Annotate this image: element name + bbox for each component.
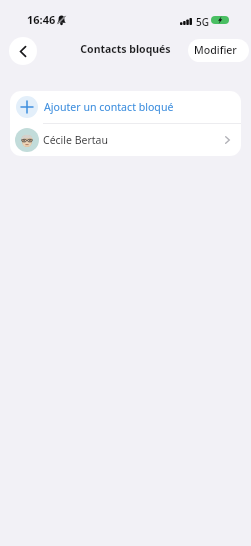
button[interactable]: Ajouter un contact bloqué (10, 91, 241, 123)
staticText: Contacts bloqués (80, 42, 171, 56)
staticText: Modifier (194, 43, 237, 57)
staticText: Ajouter un contact bloqué (44, 100, 174, 114)
button[interactable]: Cécile Bertau (10, 124, 241, 156)
staticText: 5G (196, 15, 209, 29)
staticText: Cécile Bertau (43, 133, 108, 147)
button[interactable]: Modifier (188, 39, 249, 62)
staticText: 16:46 (27, 12, 56, 27)
button[interactable]: Retour (9, 37, 37, 65)
